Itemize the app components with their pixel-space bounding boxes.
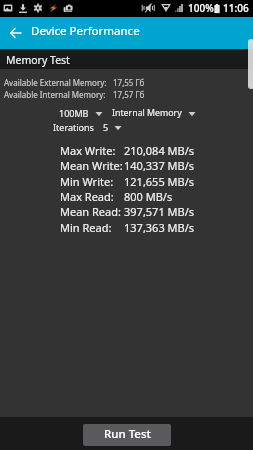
staticText: Memory Test	[6, 53, 70, 67]
button[interactable]: Internal Memory	[112, 107, 196, 119]
staticText: Max Read:	[60, 189, 114, 204]
staticText: 17,55 Гб	[113, 77, 145, 88]
staticText: 121,655 MB/s	[124, 174, 195, 189]
staticText: Mean Read:	[60, 204, 121, 219]
staticText: Device Performance	[31, 23, 140, 39]
button[interactable]: 100MB	[59, 107, 103, 119]
staticText: Internal Memory	[112, 107, 182, 119]
staticText: 17,57 Гб	[113, 89, 145, 100]
staticText: 397,571 MB/s	[124, 204, 195, 219]
staticText: Run Test	[104, 426, 151, 442]
staticText: 210,084 MB/s	[124, 143, 195, 158]
staticText: 100MB	[59, 107, 89, 119]
staticText: Min Write:	[60, 174, 114, 189]
button[interactable]: 5	[103, 121, 122, 133]
staticText: 140,337 MB/s	[124, 158, 195, 173]
staticText: 100%	[188, 1, 214, 15]
button[interactable]: Back	[5, 22, 26, 43]
staticText: 137,363 MB/s	[124, 220, 195, 235]
staticText: Max Write:	[60, 143, 116, 158]
staticText: 5	[103, 121, 109, 133]
button[interactable]: Run Test	[83, 424, 171, 446]
staticText: Available External Memory:	[4, 77, 107, 88]
staticText: 800 MB/s	[124, 189, 173, 204]
staticText: 11:06	[223, 1, 249, 15]
staticText: Min Read:	[60, 220, 112, 235]
staticText: Available Internal Memory:	[4, 89, 106, 100]
staticText: Mean Write:	[60, 158, 123, 173]
staticText: Iterations	[53, 121, 94, 133]
